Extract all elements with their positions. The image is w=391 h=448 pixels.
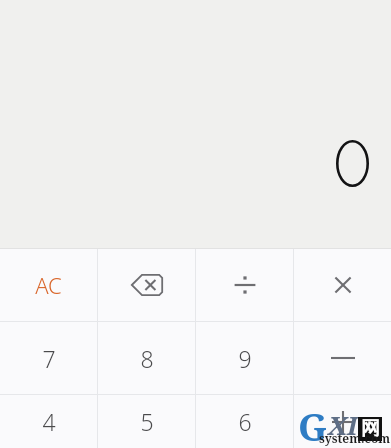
button[interactable]: Minus <box>294 322 391 394</box>
staticText: G <box>298 400 328 448</box>
button[interactable]: 8 <box>98 322 195 394</box>
button[interactable]: Plus <box>294 395 391 448</box>
staticText: 网 <box>361 417 380 441</box>
button[interactable]: Divide <box>196 249 293 321</box>
button[interactable]: Backspace <box>98 249 195 321</box>
button[interactable]: 9 <box>196 322 293 394</box>
staticText: 8 <box>140 343 154 374</box>
staticText: AC <box>35 270 62 300</box>
button[interactable]: Multiply <box>294 249 391 321</box>
button[interactable]: 7 <box>0 322 97 394</box>
staticText: 5 <box>140 406 154 437</box>
staticText: XI <box>328 407 358 442</box>
button[interactable]: 6 <box>196 395 293 448</box>
staticText: 7 <box>42 343 56 374</box>
staticText: 9 <box>238 343 252 374</box>
staticText: system.com <box>319 430 391 446</box>
button[interactable]: AC <box>0 249 97 321</box>
button[interactable]: 4 <box>0 395 97 448</box>
staticText: 4 <box>42 406 56 437</box>
staticText: 6 <box>238 406 252 437</box>
button[interactable]: 5 <box>98 395 195 448</box>
